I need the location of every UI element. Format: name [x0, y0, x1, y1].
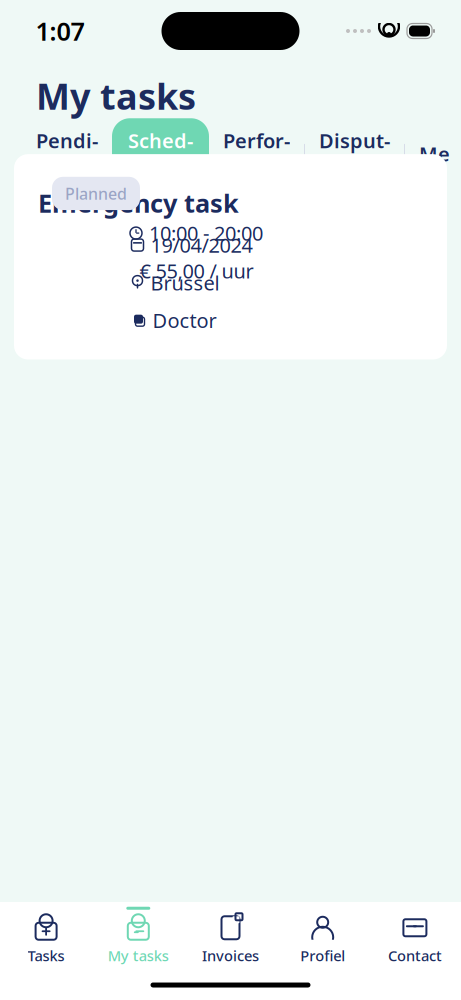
staticText: Invoices [202, 946, 259, 965]
button[interactable]: Pending [22, 118, 112, 189]
staticText: 10:00 - 20:00 [149, 220, 263, 246]
button[interactable]: Disputed [305, 118, 404, 189]
staticText: My tasks [108, 946, 169, 965]
staticText: My tasks [36, 72, 196, 120]
staticText: Doctor [152, 307, 216, 333]
staticText: 1:07 [35, 14, 84, 48]
staticText: Scheduled [128, 127, 193, 180]
button[interactable]: Me [405, 131, 450, 176]
button[interactable]: Performed [209, 118, 304, 189]
staticText: Contact [388, 946, 442, 965]
staticText: Profiel [300, 946, 345, 965]
staticText: Planned [65, 183, 127, 204]
staticText: Brussel [150, 269, 219, 296]
staticText: € 55,00 / uur [139, 257, 253, 284]
button[interactable]: Tasks [0, 902, 92, 970]
staticText: Tasks [28, 946, 65, 965]
button[interactable]: Contact [369, 902, 461, 970]
button[interactable]: Invoices [184, 902, 277, 970]
staticText: Pending [36, 127, 98, 180]
button[interactable]: Scheduled [112, 118, 209, 189]
button[interactable]: Emergency task [14, 154, 447, 359]
staticText: Emergency task [38, 186, 239, 220]
button[interactable]: Profiel [277, 902, 369, 970]
staticText: Disputed [319, 127, 390, 180]
staticText: Performed [223, 127, 290, 180]
staticText: Me [419, 140, 450, 167]
staticText: 19/04/2024 [150, 232, 252, 258]
button[interactable]: My tasks [92, 902, 184, 970]
